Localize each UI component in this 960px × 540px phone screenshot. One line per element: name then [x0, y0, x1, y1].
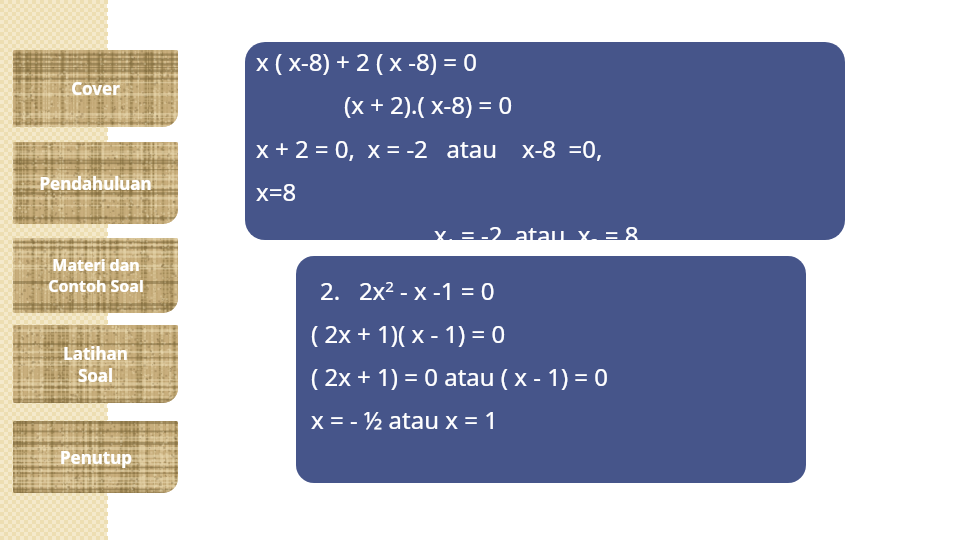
- button[interactable]: Materi dan Contoh Soal: [13, 238, 178, 313]
- staticText: x1 = -2 atau x2 = 8: [434, 218, 639, 253]
- staticText: ( 2x + 1)( x - 1) = 0: [311, 317, 506, 350]
- staticText: ( 2x + 1) = 0 atau ( x - 1) = 0: [311, 360, 609, 393]
- staticText: (x + 2).( x-8) = 0: [344, 88, 513, 121]
- button[interactable]: [245, 42, 845, 240]
- button[interactable]: Pendahuluan: [13, 142, 178, 224]
- staticText: x + 2 = 0, x = -2 atau x-8 =0,: [256, 132, 603, 165]
- staticText: Materi dan Contoh Soal: [48, 254, 144, 297]
- button[interactable]: Latihan Soal: [13, 325, 178, 403]
- staticText: x=8: [256, 175, 297, 208]
- staticText: x ( x-8) + 2 ( x -8) = 0: [256, 45, 477, 78]
- button[interactable]: Cover: [13, 50, 178, 127]
- staticText: 2. 2x2 - x -1 = 0: [320, 274, 495, 307]
- button[interactable]: Penutup: [13, 421, 178, 493]
- staticText: x = - ½ atau x = 1: [311, 403, 498, 436]
- button[interactable]: [296, 256, 806, 483]
- staticText: Latihan Soal: [63, 342, 128, 387]
- staticText: Penutup: [60, 446, 132, 469]
- staticText: Cover: [71, 77, 120, 100]
- staticText: Pendahuluan: [39, 172, 152, 195]
